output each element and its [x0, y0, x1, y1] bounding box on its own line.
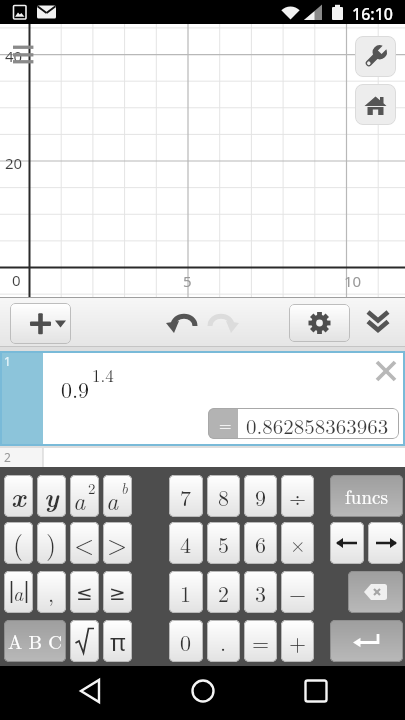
button[interactable]: π	[103, 620, 132, 662]
button[interactable]: ÷	[281, 475, 314, 517]
staticText: =	[252, 626, 270, 657]
staticText: funcs	[345, 483, 388, 510]
button[interactable]: x	[4, 475, 33, 517]
button[interactable]	[183, 672, 223, 712]
button[interactable]: >	[103, 522, 132, 564]
button[interactable]: ≥	[103, 571, 132, 613]
button[interactable]: ≤	[70, 571, 99, 613]
staticText: 10	[344, 271, 362, 291]
staticText: 1	[4, 353, 11, 369]
button[interactable]: y	[37, 475, 66, 517]
staticText: ×	[290, 529, 306, 557]
staticText: 9	[255, 481, 267, 512]
staticText: A B C	[8, 628, 63, 655]
staticText: 6	[255, 528, 267, 559]
button[interactable]	[296, 672, 336, 712]
button[interactable]: 9	[244, 475, 277, 517]
staticText: <	[74, 525, 95, 562]
button[interactable]: 2	[207, 571, 240, 613]
staticText: a	[13, 578, 24, 606]
button[interactable]: 6	[244, 522, 277, 564]
button[interactable]: =	[244, 620, 277, 662]
staticText: >	[107, 525, 128, 562]
staticText: 0	[12, 270, 21, 290]
button[interactable]	[74, 672, 114, 712]
button[interactable]	[330, 522, 364, 564]
button[interactable]: ×	[281, 522, 314, 564]
button[interactable]: .	[207, 620, 240, 662]
staticText: 2	[88, 477, 96, 498]
staticText: b	[121, 477, 128, 498]
staticText: =	[219, 413, 232, 436]
staticText: 2	[218, 577, 230, 608]
button[interactable]	[289, 304, 350, 342]
button[interactable]	[360, 305, 396, 339]
staticText: 8	[218, 481, 230, 512]
staticText: y	[44, 477, 59, 515]
button[interactable]	[375, 360, 399, 384]
button[interactable]: 0	[169, 620, 203, 662]
button[interactable]	[330, 620, 403, 662]
button[interactable]: ,	[37, 571, 66, 613]
button[interactable]: +	[281, 620, 314, 662]
staticText: 5	[183, 271, 192, 291]
button[interactable]	[203, 303, 243, 343]
staticText: 0	[180, 626, 192, 657]
staticText: )	[46, 525, 57, 562]
button[interactable]: a	[4, 571, 33, 613]
staticText: ≥	[109, 581, 126, 604]
staticText: 5	[218, 528, 230, 559]
button[interactable]: 1	[169, 571, 203, 613]
staticText: 1.4	[92, 363, 114, 387]
staticText: ÷	[289, 481, 307, 512]
staticText: 7	[180, 481, 192, 512]
button[interactable]: A B C	[4, 620, 66, 662]
staticText: 4	[180, 528, 192, 559]
staticText: a	[73, 483, 86, 517]
button[interactable]: 4	[169, 522, 203, 564]
button[interactable]: 1	[0, 351, 405, 446]
button[interactable]: )	[37, 522, 66, 564]
staticText: 40	[5, 46, 23, 66]
staticText: −	[289, 577, 307, 608]
button[interactable]: 7	[169, 475, 203, 517]
staticText: ,	[48, 577, 55, 608]
button[interactable]	[355, 36, 396, 77]
staticText: 16:10	[352, 3, 393, 25]
staticText: 20	[5, 153, 23, 173]
button[interactable]: 3	[244, 571, 277, 613]
staticText: 2	[4, 449, 11, 465]
button[interactable]: 8	[207, 475, 240, 517]
button[interactable]	[348, 571, 403, 613]
staticText: (	[13, 525, 24, 562]
button[interactable]: funcs	[330, 475, 403, 517]
button[interactable]: a	[103, 475, 132, 517]
button[interactable]	[355, 84, 396, 125]
button[interactable]: <	[70, 522, 99, 564]
staticText: +	[289, 626, 307, 657]
staticText: 1	[180, 577, 192, 608]
button[interactable]	[70, 620, 99, 662]
staticText: a	[106, 483, 119, 517]
button[interactable]	[10, 303, 71, 344]
button[interactable]: −	[281, 571, 314, 613]
button[interactable]: 5	[207, 522, 240, 564]
button[interactable]	[165, 303, 205, 343]
button[interactable]: a	[70, 475, 99, 517]
staticText: .	[220, 626, 227, 657]
staticText: π	[110, 625, 126, 658]
staticText: 0.9	[61, 373, 90, 404]
staticText: 0.862858363963	[246, 410, 389, 439]
staticText: 3	[255, 577, 267, 608]
button[interactable]	[368, 522, 403, 564]
staticText: ≤	[76, 581, 93, 604]
staticText: x	[11, 477, 26, 515]
button[interactable]: (	[4, 522, 33, 564]
